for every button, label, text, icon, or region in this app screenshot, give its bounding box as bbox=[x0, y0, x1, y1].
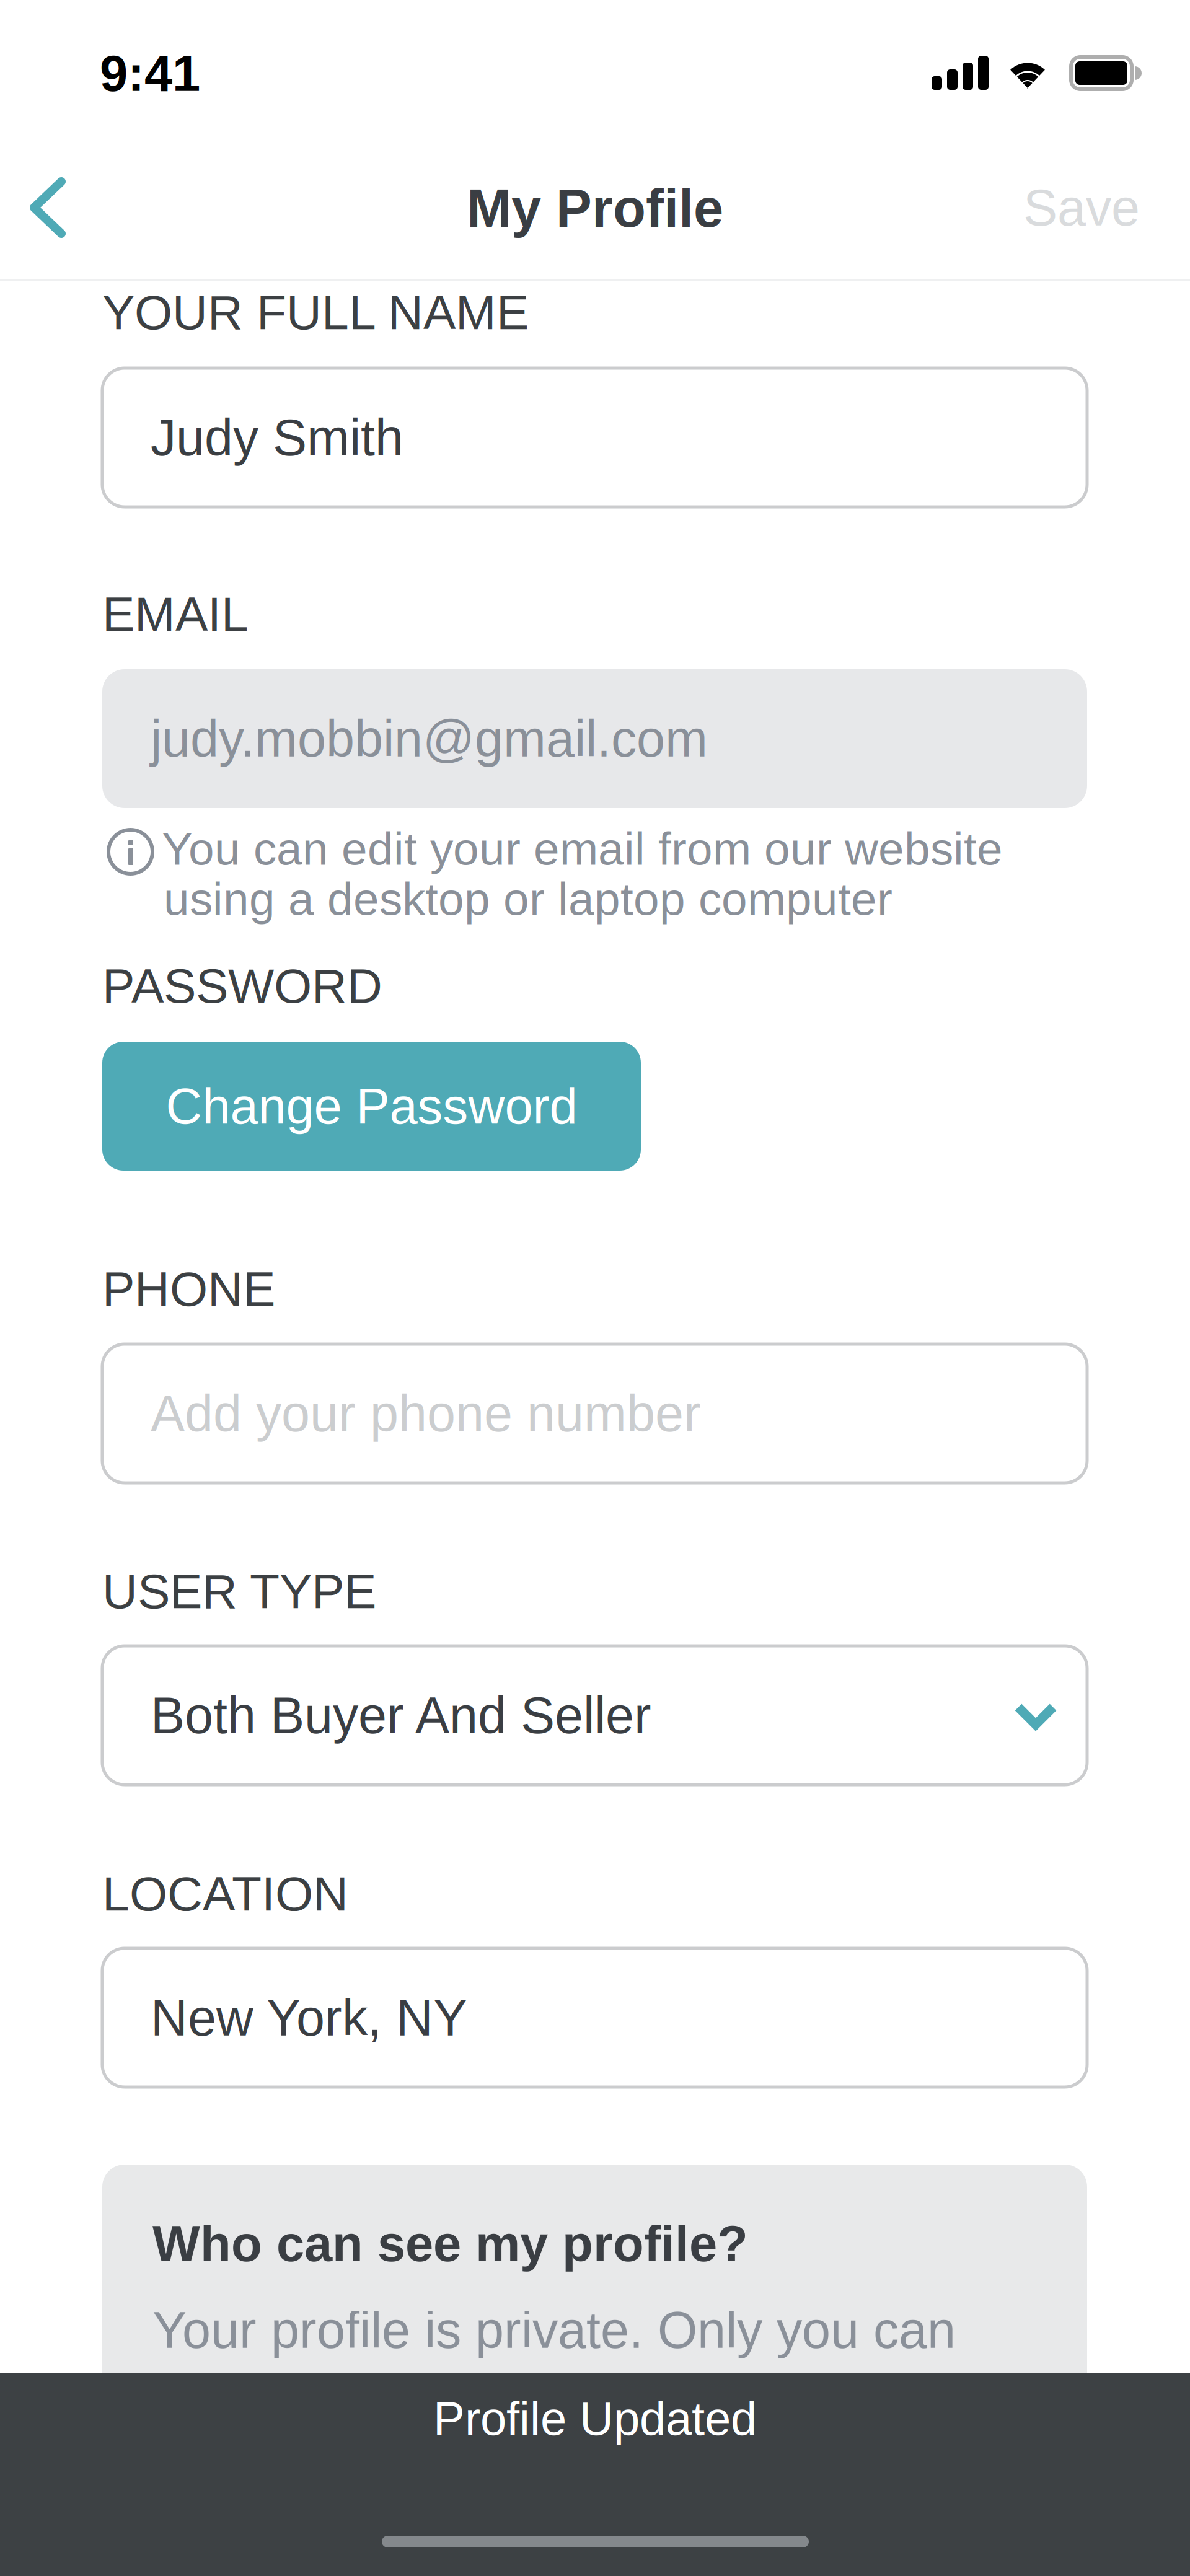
staticText: YOUR FULL NAME bbox=[102, 285, 529, 340]
staticText: see this information bbox=[152, 2369, 596, 2426]
staticText: judy.mobbin@gmail.com bbox=[151, 710, 708, 767]
staticText: Both Buyer And Seller bbox=[151, 1687, 651, 1744]
staticText: Profile Updated bbox=[433, 2392, 757, 2445]
staticText: Change Password bbox=[166, 1078, 577, 1134]
staticText: EMAIL bbox=[102, 587, 249, 641]
staticText: New York, NY bbox=[151, 1989, 467, 2046]
staticText: Who can see my profile? bbox=[152, 2215, 748, 2272]
staticText: 9:41 bbox=[100, 45, 200, 102]
button[interactable]: Change Password bbox=[102, 1042, 641, 1171]
staticText: My Profile bbox=[467, 178, 723, 238]
staticText: Judy Smith bbox=[151, 409, 403, 466]
staticText: You can edit your email from our website bbox=[162, 823, 1003, 875]
staticText: USER TYPE bbox=[102, 1564, 376, 1619]
staticText: Add your phone number bbox=[151, 1385, 701, 1442]
button[interactable]: Back bbox=[0, 149, 118, 266]
staticText: PASSWORD bbox=[102, 959, 382, 1013]
staticText: LOCATION bbox=[102, 1866, 348, 1921]
staticText: Save bbox=[1023, 179, 1140, 236]
button[interactable]: Save bbox=[998, 149, 1165, 266]
staticText: PHONE bbox=[102, 1262, 275, 1316]
staticText: using a desktop or laptop computer bbox=[164, 873, 892, 925]
staticText: Your profile is private. Only you can bbox=[152, 2301, 956, 2359]
